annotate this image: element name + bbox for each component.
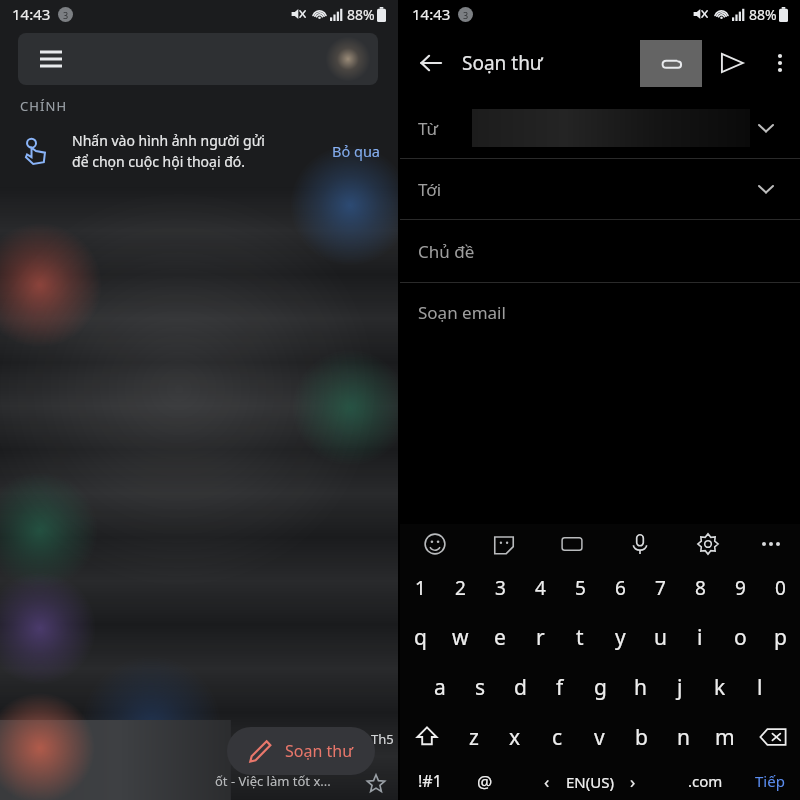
- staticText: c: [552, 723, 563, 752]
- staticText: 0: [775, 575, 786, 601]
- button[interactable]: Tới: [400, 159, 800, 219]
- staticText: .com: [688, 771, 723, 791]
- button[interactable]: Chủ đề: [400, 220, 800, 282]
- button[interactable]: Soạn thư: [227, 727, 375, 775]
- staticText: ‹: [544, 770, 550, 793]
- button[interactable]: !#1: [400, 762, 460, 800]
- staticText: e: [494, 623, 506, 652]
- button[interactable]: Soạn email: [400, 283, 800, 341]
- staticText: 9: [735, 575, 746, 601]
- staticText: o: [734, 623, 747, 652]
- button[interactable]: Back: [400, 28, 462, 98]
- button[interactable]: 9: [720, 564, 760, 612]
- button[interactable]: Account: [326, 37, 370, 81]
- button[interactable]: x: [494, 712, 536, 762]
- button[interactable]: Settings: [674, 524, 742, 564]
- button[interactable]: More: [742, 524, 800, 564]
- staticText: f: [556, 673, 564, 702]
- button[interactable]: Shift: [400, 712, 453, 762]
- button[interactable]: n: [662, 712, 704, 762]
- staticText: a: [434, 673, 446, 702]
- staticText: để chọn cuộc hội thoại đó.: [72, 152, 246, 171]
- button[interactable]: ‹: [510, 762, 670, 800]
- button[interactable]: y: [600, 612, 640, 662]
- button[interactable]: p: [760, 612, 800, 662]
- button[interactable]: 8: [680, 564, 720, 612]
- staticText: 5: [575, 575, 586, 601]
- staticText: l: [757, 673, 763, 702]
- staticText: 6: [615, 575, 626, 601]
- button[interactable]: Bỏ qua: [332, 141, 380, 161]
- button[interactable]: 7: [640, 564, 680, 612]
- staticText: 7: [655, 575, 666, 601]
- staticText: 4: [535, 575, 546, 601]
- staticText: w: [452, 623, 469, 652]
- staticText: CHÍNH: [20, 97, 68, 115]
- button[interactable]: w: [440, 612, 480, 662]
- button[interactable]: Backspace: [746, 712, 800, 762]
- button[interactable]: Attach file: [640, 40, 702, 87]
- button[interactable]: 6: [600, 564, 640, 612]
- button[interactable]: @: [460, 762, 510, 800]
- button[interactable]: h: [620, 662, 660, 712]
- button[interactable]: Tiếp: [740, 762, 800, 800]
- button[interactable]: c: [536, 712, 578, 762]
- button[interactable]: More options: [760, 28, 800, 98]
- button[interactable]: Từ: [400, 98, 800, 158]
- staticText: Tới: [418, 178, 442, 201]
- staticText: n: [677, 723, 690, 752]
- button[interactable]: 3: [480, 564, 520, 612]
- staticText: g: [594, 673, 607, 702]
- staticText: 14:43: [412, 4, 451, 24]
- button[interactable]: j: [660, 662, 700, 712]
- button[interactable]: Expand: [752, 114, 780, 142]
- button[interactable]: GIF: [538, 524, 606, 564]
- button[interactable]: m: [704, 712, 746, 762]
- button[interactable]: .com: [670, 762, 740, 800]
- staticText: h: [634, 673, 647, 702]
- staticText: 88%: [749, 5, 777, 24]
- button[interactable]: k: [700, 662, 740, 712]
- button[interactable]: r: [520, 612, 560, 662]
- staticText: Chủ đề: [418, 240, 475, 263]
- staticText: u: [654, 623, 667, 652]
- button[interactable]: Sticker: [469, 524, 538, 564]
- button[interactable]: g: [580, 662, 620, 712]
- button[interactable]: s: [460, 662, 500, 712]
- staticText: q: [414, 623, 427, 652]
- button[interactable]: q: [400, 612, 440, 662]
- button[interactable]: o: [720, 612, 760, 662]
- button[interactable]: i: [680, 612, 720, 662]
- staticText: j: [677, 673, 683, 702]
- button[interactable]: Account: [18, 33, 378, 85]
- button[interactable]: z: [453, 712, 494, 762]
- button[interactable]: 0: [760, 564, 800, 612]
- button[interactable]: d: [500, 662, 540, 712]
- button[interactable]: l: [740, 662, 780, 712]
- button[interactable]: b: [620, 712, 662, 762]
- staticText: Bỏ qua: [332, 141, 380, 161]
- button[interactable]: 4: [520, 564, 560, 612]
- button[interactable]: Send: [704, 28, 760, 98]
- button[interactable]: 2: [440, 564, 480, 612]
- staticText: v: [594, 723, 605, 752]
- staticText: r: [536, 623, 545, 652]
- button[interactable]: f: [540, 662, 580, 712]
- button[interactable]: Expand: [752, 175, 780, 203]
- staticText: Soạn thư: [462, 50, 543, 76]
- button[interactable]: v: [578, 712, 620, 762]
- staticText: ốt - Việc làm tốt x...: [215, 772, 331, 790]
- button[interactable]: 5: [560, 564, 600, 612]
- button[interactable]: Nhấn vào hình ảnh người gửi: [0, 115, 398, 187]
- button[interactable]: a: [420, 662, 460, 712]
- button[interactable]: e: [480, 612, 520, 662]
- staticText: !#1: [418, 770, 442, 792]
- staticText: 1: [415, 575, 426, 601]
- button[interactable]: 1: [400, 564, 440, 612]
- staticText: Th5: [371, 730, 394, 748]
- button[interactable]: Voice input: [606, 524, 674, 564]
- staticText: m: [715, 723, 735, 752]
- button[interactable]: t: [560, 612, 600, 662]
- button[interactable]: Emoji: [400, 524, 469, 564]
- button[interactable]: u: [640, 612, 680, 662]
